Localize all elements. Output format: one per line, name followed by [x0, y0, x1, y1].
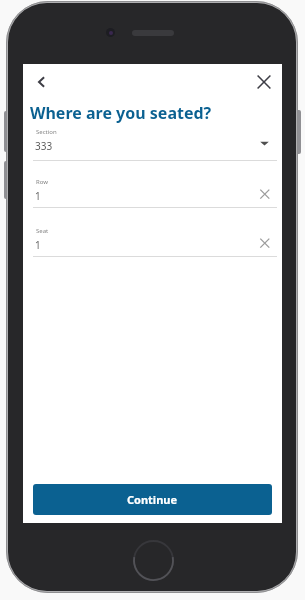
staticText: Row — [36, 178, 48, 186]
button[interactable]: Row — [33, 176, 277, 211]
button[interactable] — [252, 70, 276, 94]
staticText: 1 — [35, 238, 41, 252]
button[interactable]: Continue — [33, 484, 272, 515]
staticText: Seat — [36, 227, 49, 235]
button[interactable] — [29, 70, 53, 94]
staticText: 333 — [35, 139, 53, 153]
button[interactable]: Seat — [33, 225, 277, 260]
staticText: Section — [36, 128, 57, 136]
staticText: Continue — [127, 492, 178, 507]
button[interactable]: Section — [33, 126, 277, 161]
staticText: Where are you seated? — [30, 102, 212, 124]
staticText: 1 — [35, 189, 41, 203]
